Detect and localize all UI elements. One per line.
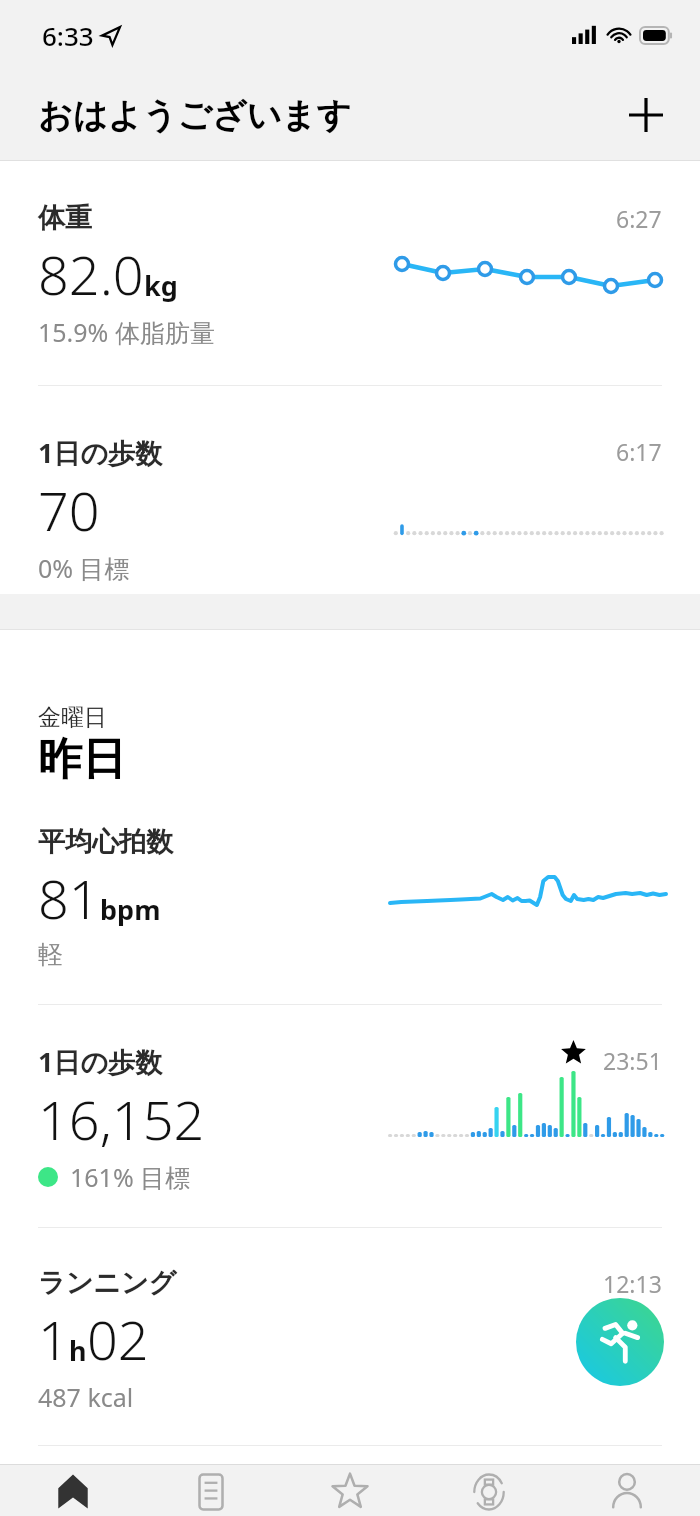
button[interactable]: プログラム	[284, 1465, 416, 1516]
staticText: 161% 目標	[70, 1160, 191, 1194]
staticText: 70	[38, 473, 100, 547]
staticText: 6:27	[616, 203, 662, 234]
button[interactable]: 日記	[7, 1465, 139, 1516]
button[interactable]: 平均心拍数	[0, 805, 700, 985]
staticText: bpm	[100, 891, 161, 928]
staticText: 6:33	[42, 18, 94, 53]
staticText: 体重	[38, 201, 92, 235]
staticText: 23:51	[603, 1045, 662, 1076]
button[interactable]: 23:51	[0, 1023, 700, 1208]
staticText: おはようございます	[38, 94, 352, 137]
staticText: 1日の歩数	[38, 1043, 163, 1080]
staticText: 1日の歩数	[38, 434, 163, 471]
staticText: h	[69, 1332, 87, 1369]
staticText: 0% 目標	[38, 551, 130, 585]
button[interactable]: マイデバイス	[423, 1465, 555, 1516]
staticText: 12:13	[603, 1268, 662, 1299]
button[interactable]: 6:27	[0, 161, 700, 366]
staticText: 16,152	[38, 1082, 205, 1156]
staticText: 平均心拍数	[38, 825, 173, 859]
staticText: ランニング	[38, 1266, 177, 1300]
staticText: 昨日	[38, 732, 126, 787]
staticText: 1	[38, 1302, 69, 1376]
staticText: 81	[38, 861, 100, 935]
button[interactable]: 12:13	[0, 1246, 700, 1426]
staticText: 金曜日	[38, 703, 107, 732]
staticText: kg	[144, 267, 178, 304]
staticText: 15.9% 体脂肪量	[38, 315, 215, 349]
button[interactable]: 6:17	[0, 404, 700, 594]
staticText: 02	[87, 1302, 149, 1376]
staticText: 487 kcal	[38, 1380, 134, 1414]
button[interactable]: ダッシュボード	[145, 1465, 277, 1516]
button[interactable]: プロフィール	[561, 1465, 693, 1516]
button[interactable]: Add	[616, 85, 676, 145]
staticText: 6:17	[616, 436, 662, 467]
staticText: 82.0	[38, 237, 144, 311]
staticText: 軽	[38, 939, 63, 970]
